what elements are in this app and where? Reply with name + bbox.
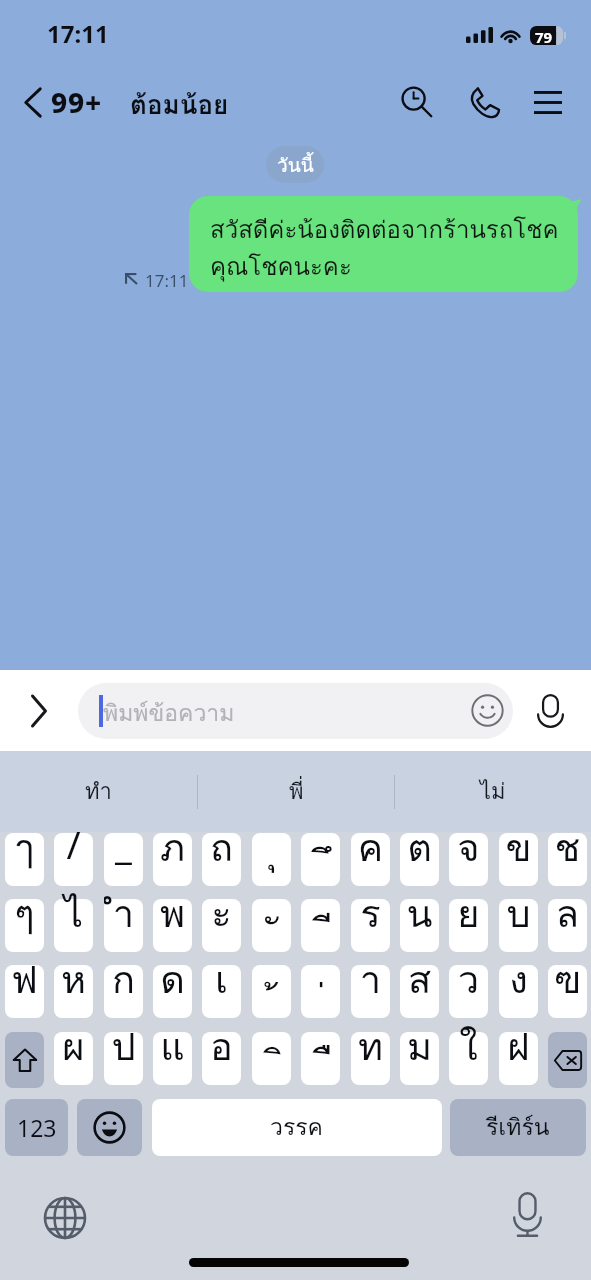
button[interactable]: Shift <box>5 1032 44 1088</box>
button[interactable] <box>153 965 192 1018</box>
button[interactable] <box>351 833 390 886</box>
staticText: ไม่ <box>480 774 506 809</box>
button[interactable]: Menu <box>521 68 575 136</box>
staticText: วันนี้ <box>277 150 314 180</box>
staticText: ฟ <box>5 949 44 1002</box>
button[interactable] <box>301 1032 340 1085</box>
button[interactable]: Call <box>457 68 511 136</box>
button[interactable] <box>153 899 192 952</box>
staticText: ะ <box>202 883 241 936</box>
staticText: ส <box>400 949 439 1002</box>
staticText: ห <box>54 949 93 1002</box>
button[interactable] <box>252 899 291 952</box>
button[interactable]: Search chat history <box>390 68 444 136</box>
button[interactable] <box>153 833 192 886</box>
button[interactable]: Change keyboard <box>29 1182 100 1253</box>
button[interactable]: สวัสดีค่ะน้องติดต่อจากร้านรถโชค คุณโชคนะ… <box>189 196 578 292</box>
button[interactable] <box>400 965 439 1018</box>
button[interactable]: พี่ <box>198 751 394 832</box>
staticText: ำ <box>104 883 143 936</box>
staticText: ร <box>351 883 390 936</box>
button[interactable] <box>54 1032 93 1085</box>
button[interactable] <box>202 965 241 1018</box>
staticText: ๆ <box>5 883 44 936</box>
staticText: อ <box>202 1016 241 1069</box>
staticText: ม <box>400 1016 439 1069</box>
staticText: ป <box>104 1016 143 1069</box>
staticText: ต <box>400 817 439 870</box>
staticText: ภ <box>153 817 192 870</box>
button[interactable] <box>548 833 587 886</box>
staticText: า <box>351 949 390 1002</box>
button[interactable]: Voice message <box>513 670 587 751</box>
button[interactable] <box>104 965 143 1018</box>
button[interactable] <box>400 833 439 886</box>
button[interactable] <box>153 1032 192 1085</box>
button[interactable] <box>5 833 44 886</box>
staticText: ก <box>104 949 143 1002</box>
button[interactable] <box>499 899 538 952</box>
button[interactable] <box>449 1032 488 1085</box>
button[interactable] <box>301 899 340 952</box>
button[interactable]: 99+ <box>0 68 114 136</box>
staticText: 17:11 <box>47 17 109 50</box>
button[interactable] <box>400 1032 439 1085</box>
staticText: เ <box>202 949 241 1002</box>
staticText: พ <box>153 883 192 936</box>
button[interactable] <box>499 965 538 1018</box>
staticText: วรรค <box>270 1109 324 1146</box>
button[interactable] <box>202 1032 241 1085</box>
button[interactable]: Emoji <box>77 1099 142 1156</box>
button[interactable]: 123 <box>5 1099 68 1156</box>
button[interactable] <box>54 965 93 1018</box>
button[interactable]: วรรค <box>152 1099 442 1156</box>
button[interactable]: พิมพ์ข้อความ <box>78 683 513 739</box>
button[interactable] <box>499 833 538 886</box>
button[interactable]: ทำ <box>0 751 197 832</box>
button[interactable] <box>351 1032 390 1085</box>
button[interactable] <box>202 899 241 952</box>
other: Shift <box>13 1048 37 1073</box>
button[interactable] <box>351 899 390 952</box>
staticText: ด <box>153 949 192 1002</box>
button[interactable]: More options <box>0 670 78 751</box>
button[interactable] <box>5 965 44 1018</box>
button[interactable] <box>252 1032 291 1085</box>
button[interactable]: Dictate <box>492 1179 563 1250</box>
staticText: ไ <box>54 883 93 936</box>
button[interactable] <box>449 965 488 1018</box>
staticText: ฃ <box>548 949 587 1002</box>
button[interactable] <box>301 833 340 886</box>
button[interactable] <box>252 965 291 1018</box>
button[interactable] <box>548 965 587 1018</box>
staticText: 17:11 <box>145 269 189 292</box>
staticText: น <box>400 883 439 936</box>
button[interactable] <box>104 833 143 886</box>
staticText: ถ <box>202 817 241 870</box>
staticText: แ <box>153 1016 192 1069</box>
button[interactable] <box>351 965 390 1018</box>
staticText: 79 <box>535 27 553 46</box>
button[interactable] <box>499 1032 538 1085</box>
other: Backspace <box>554 1050 582 1071</box>
staticText: จ <box>449 817 488 870</box>
button[interactable] <box>301 965 340 1018</box>
button[interactable]: วันนี้ <box>266 146 324 183</box>
button[interactable] <box>104 899 143 952</box>
button[interactable] <box>5 899 44 952</box>
button[interactable]: รีเทิร์น <box>450 1099 586 1156</box>
button[interactable]: Backspace <box>548 1032 587 1088</box>
button[interactable] <box>400 899 439 952</box>
button[interactable] <box>252 833 291 886</box>
button[interactable] <box>449 899 488 952</box>
button[interactable] <box>54 899 93 952</box>
staticText: ข <box>499 817 538 870</box>
staticText: ว <box>449 949 488 1002</box>
button[interactable]: ไม่ <box>395 751 591 832</box>
button[interactable] <box>54 833 93 886</box>
staticText: ย <box>449 883 488 936</box>
button[interactable] <box>202 833 241 886</box>
button[interactable] <box>548 899 587 952</box>
button[interactable] <box>104 1032 143 1085</box>
button[interactable] <box>449 833 488 886</box>
